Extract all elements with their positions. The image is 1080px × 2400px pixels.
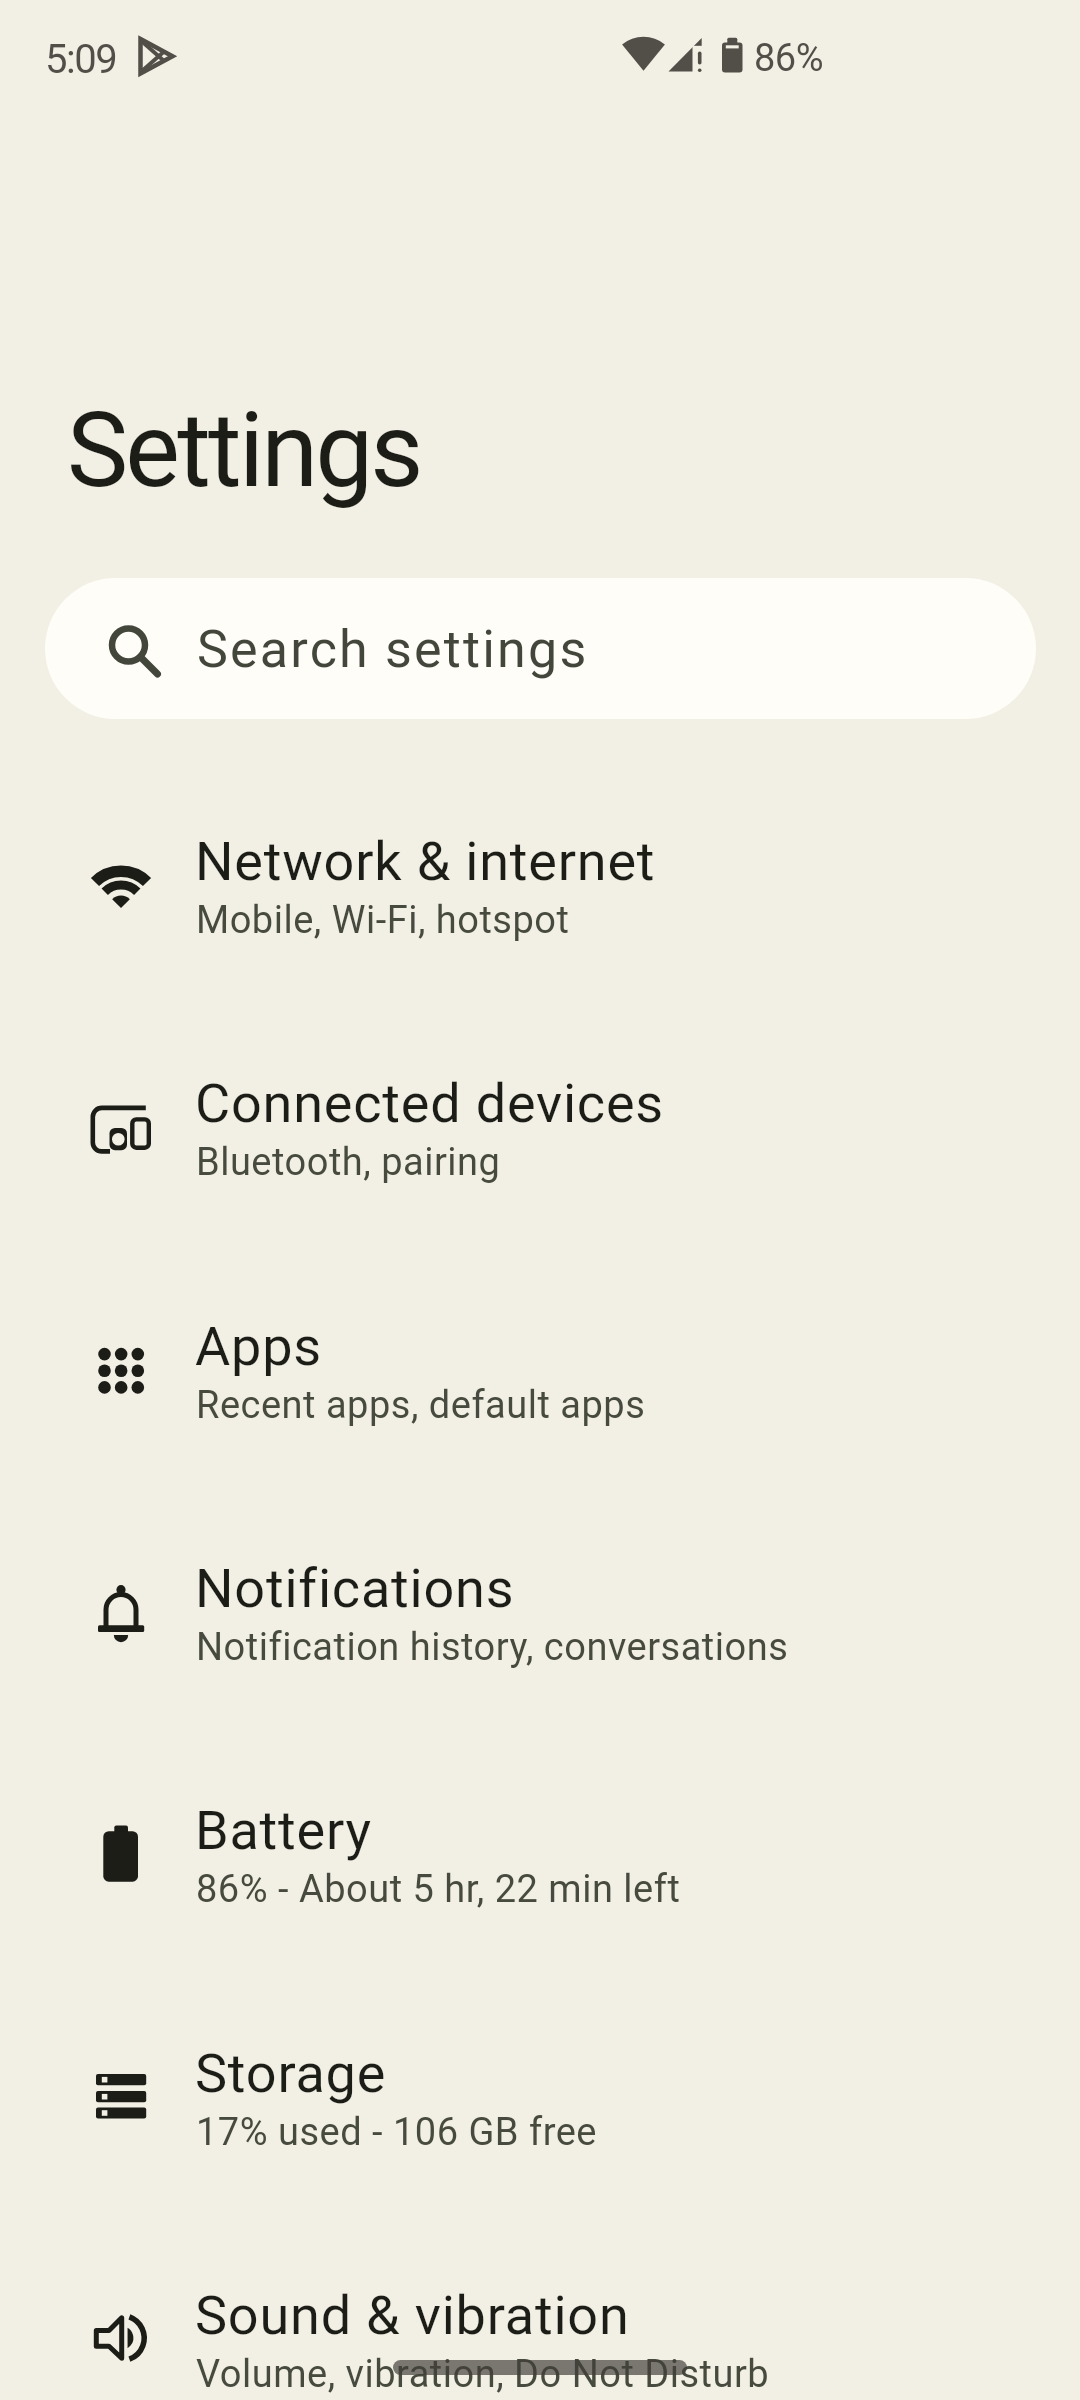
button[interactable]: Notifications xyxy=(0,1488,1080,1730)
button[interactable]: Apps xyxy=(0,1246,1080,1488)
staticText: Storage xyxy=(195,2042,387,2105)
staticText: Network & internet xyxy=(195,830,656,893)
staticText: Sound & vibration xyxy=(195,2284,630,2347)
staticText: Connected devices xyxy=(195,1072,665,1135)
staticText: Settings xyxy=(67,390,421,511)
staticText: Volume, vibration, Do Not Disturb xyxy=(196,2352,770,2397)
staticText: Bluetooth, pairing xyxy=(196,1140,501,1185)
staticText: 5:09 xyxy=(45,36,117,83)
staticText: Mobile, Wi-Fi, hotspot xyxy=(196,898,570,943)
staticText: Notifications xyxy=(195,1557,515,1620)
staticText: Battery xyxy=(195,1799,372,1862)
staticText: Search settings xyxy=(197,619,589,680)
staticText: 17% used - 106 GB free xyxy=(196,2110,597,2155)
staticText: 86% - About 5 hr, 22 min left xyxy=(196,1867,681,1912)
button[interactable]: Network & internet xyxy=(0,761,1080,1003)
staticText: Notification history, conversations xyxy=(196,1625,789,1670)
staticText: 86% xyxy=(754,36,824,81)
button[interactable]: Storage xyxy=(0,1973,1080,2215)
button[interactable]: Sound & vibration xyxy=(0,2215,1080,2400)
button[interactable]: Connected devices xyxy=(0,1003,1080,1245)
button[interactable]: Battery xyxy=(0,1730,1080,1972)
staticText: Recent apps, default apps xyxy=(196,1383,646,1428)
staticText: Apps xyxy=(195,1315,322,1378)
button[interactable]: Search settings xyxy=(45,578,1036,719)
